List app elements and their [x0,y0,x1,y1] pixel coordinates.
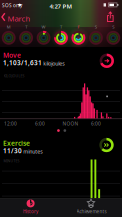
staticText: T [60,24,62,30]
staticText: F [77,24,79,30]
staticText: W [42,24,46,30]
button[interactable]: Share [107,11,114,22]
staticText: 6:00 [35,120,45,127]
staticText: 11/30 [3,146,22,155]
button[interactable]: History [0,198,61,217]
staticText: Move [3,50,21,60]
button[interactable]: Saturday [0,0,122,217]
staticText: M [7,24,11,30]
button[interactable]: Tuesday [0,0,122,217]
staticText: 4:27 PM [49,2,72,10]
staticText: KILOJOULES [3,73,24,78]
staticText: History [23,208,38,214]
staticText: MINUTES [3,158,19,163]
staticText: Achievements [76,208,106,214]
staticText: SOS only [2,2,22,9]
staticText: T [25,24,27,30]
button[interactable]: Monday [0,0,122,217]
staticText: 12:00 [4,120,17,127]
button[interactable]: Sunday [0,0,122,217]
staticText: 6:00 [91,120,101,127]
staticText: March [7,13,30,24]
button[interactable]: Achievements [61,198,122,217]
staticText: S [95,24,97,30]
staticText: S [112,24,114,30]
staticText: minutes [23,148,42,155]
button[interactable]: Back [0,0,34,26]
staticText: Exercise [3,138,30,148]
staticText: kilojoules [43,60,64,67]
staticText: 1,103/1,631 [3,58,42,67]
button[interactable]: Thursday [0,0,122,217]
button[interactable]: Wednesday [0,0,122,217]
staticText: NOON [62,120,78,127]
button[interactable]: Friday [0,0,122,217]
